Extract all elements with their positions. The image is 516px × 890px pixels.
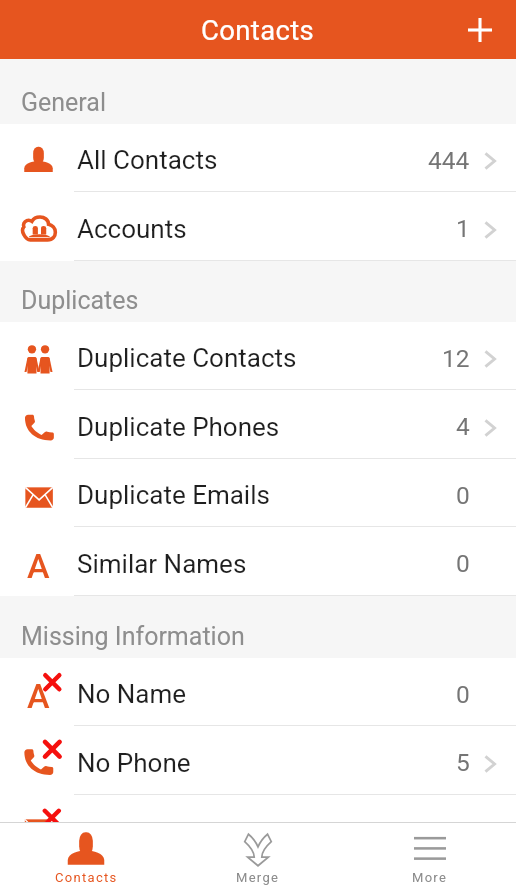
staticText: A <box>27 546 50 586</box>
button[interactable]: Add contact <box>444 0 516 59</box>
staticText: More <box>412 870 448 885</box>
staticText: 4 <box>456 412 470 441</box>
staticText: Contacts <box>201 14 315 46</box>
staticText: Accounts <box>77 214 455 244</box>
staticText: 1 <box>456 214 470 243</box>
button[interactable]: No Phone <box>0 726 516 795</box>
button[interactable]: More <box>344 823 516 890</box>
staticText: 12 <box>442 344 470 373</box>
staticText: All Contacts <box>77 145 427 175</box>
staticText: Duplicate Contacts <box>77 343 441 373</box>
staticText: Duplicates <box>21 286 139 315</box>
button[interactable]: Duplicate Emails <box>0 459 516 527</box>
button[interactable]: Duplicate Phones <box>0 390 516 459</box>
button[interactable]: A <box>0 658 516 726</box>
staticText: A <box>27 676 50 716</box>
staticText: General <box>21 88 107 117</box>
staticText: No Phone <box>77 748 455 778</box>
staticText: Contacts <box>55 870 118 885</box>
button[interactable]: All Contacts <box>0 124 516 192</box>
staticText: Duplicate Phones <box>77 412 455 442</box>
button[interactable]: Contacts <box>0 823 172 890</box>
staticText: Similar Names <box>77 549 455 579</box>
staticText: 0 <box>456 680 470 709</box>
button[interactable]: No Phone & Email <box>0 795 516 822</box>
button[interactable]: Merge <box>172 823 344 890</box>
button[interactable]: Accounts <box>0 192 516 261</box>
staticText: Merge <box>236 870 280 885</box>
staticText: Duplicate Emails <box>77 480 455 510</box>
staticText: 0 <box>456 481 470 510</box>
staticText: Missing Information <box>21 622 245 651</box>
button[interactable]: Duplicate Contacts <box>0 322 516 390</box>
staticText: 5 <box>456 748 470 777</box>
staticText: 444 <box>428 146 470 175</box>
staticText: 0 <box>456 549 470 578</box>
staticText: No Name <box>77 679 455 709</box>
button[interactable]: A <box>0 527 516 596</box>
